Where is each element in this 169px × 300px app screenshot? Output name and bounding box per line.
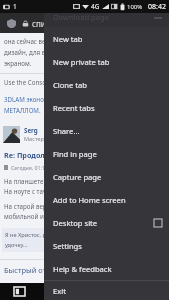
staticText: Find in page: [53, 149, 162, 159]
button[interactable]: Clone tab: [44, 73, 169, 96]
button[interactable]: Find in page: [44, 142, 169, 165]
staticText: экраном.: [4, 59, 32, 67]
staticText: она сейчас ве: [4, 37, 46, 45]
staticText: На планшете с: [4, 177, 49, 185]
staticText: Add to Home screen: [53, 195, 162, 205]
staticText: дизайн, для во: [4, 48, 49, 56]
button[interactable]: New tab: [44, 27, 169, 50]
button[interactable]: Help & feedback: [44, 257, 169, 280]
staticText: Быстрый от: [4, 265, 47, 275]
button[interactable]: Download page: [44, 13, 169, 27]
button[interactable]: New private tab: [44, 50, 169, 73]
staticText: New private tab: [53, 57, 162, 67]
staticText: 4G: [91, 2, 100, 11]
staticText: Serg: [24, 126, 38, 134]
staticText: Recent tabs: [53, 103, 162, 113]
staticText: Capture page: [53, 172, 162, 182]
staticText: Desktop site: [53, 218, 154, 228]
staticText: МЕТАЛЛОМ.: [4, 106, 41, 114]
button[interactable]: Shield: [5, 17, 18, 30]
staticText: 1: [13, 2, 17, 11]
staticText: 100%: [127, 3, 143, 11]
staticText: Я не Христос, ры: [5, 231, 51, 239]
staticText: Мастер: [24, 135, 44, 143]
staticText: Settings: [53, 241, 162, 251]
button[interactable]: Share...: [44, 119, 169, 142]
staticText: Use the Console,: [4, 78, 55, 86]
staticText: мобильной и д: [4, 212, 50, 220]
staticText: Clone tab: [53, 80, 162, 90]
button[interactable]: Recents: [14, 287, 25, 296]
staticText: удочку...: [5, 241, 28, 249]
button[interactable]: Settings: [44, 234, 169, 257]
button[interactable]: Capture page: [44, 165, 169, 188]
staticText: Share...: [53, 126, 162, 136]
staticText: 3DLAM экономит: [4, 95, 56, 103]
staticText: На ноуте с тач: [4, 187, 47, 195]
staticText: Exit: [53, 286, 162, 296]
button[interactable]: Add to Home screen: [44, 188, 169, 211]
button[interactable]: Recent tabs: [44, 96, 169, 119]
staticText: спи: [32, 18, 46, 29]
staticText: На старой вер: [4, 202, 47, 210]
staticText: 08:42: [148, 2, 166, 12]
staticText: Сегодня, 01:19: [11, 164, 48, 171]
staticText: New tab: [53, 34, 162, 44]
button[interactable]: Exit: [44, 281, 169, 300]
staticText: Re: Продолж: [4, 150, 52, 160]
staticText: Download page: [53, 12, 154, 22]
staticText: Help & feedback: [53, 264, 162, 274]
button[interactable]: Desktop site: [44, 211, 169, 234]
